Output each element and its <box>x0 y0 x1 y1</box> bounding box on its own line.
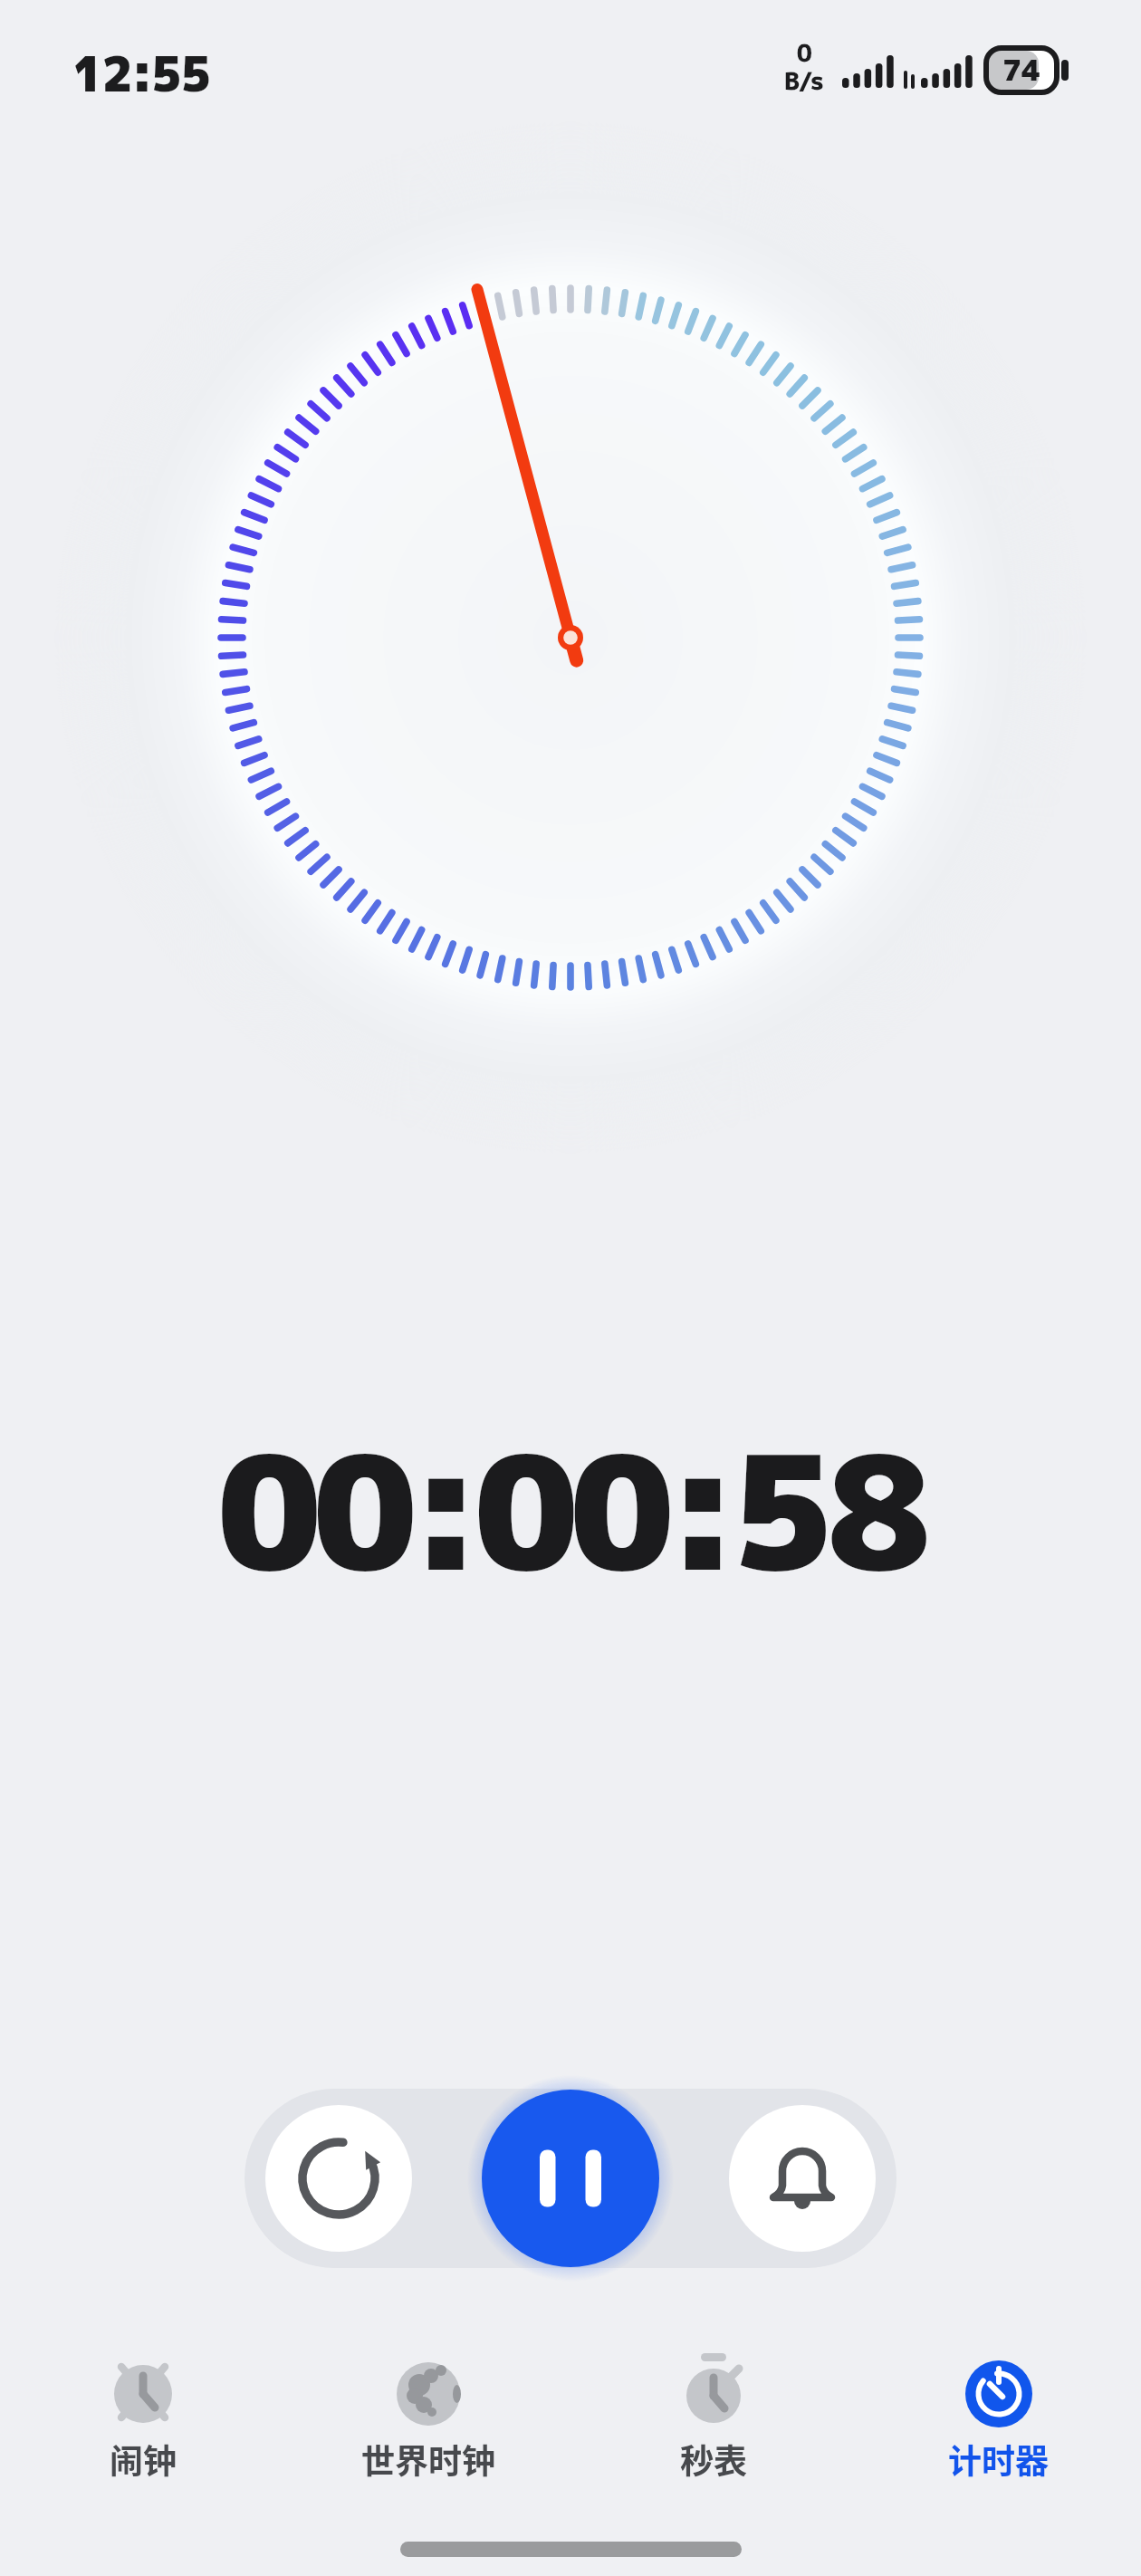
button[interactable]: 闹钟 <box>0 2351 285 2484</box>
button[interactable]: 计时器 <box>856 2351 1141 2484</box>
staticText: 12:55 <box>72 41 210 95</box>
button[interactable] <box>265 2105 412 2252</box>
staticText: 秒表 <box>680 2435 747 2484</box>
staticText: 世界时钟 <box>361 2435 495 2484</box>
button[interactable] <box>729 2105 876 2252</box>
staticText: 00:00:58 <box>217 1400 924 1620</box>
staticText: B/s <box>784 63 824 96</box>
staticText: 闹钟 <box>110 2435 177 2484</box>
button[interactable]: 秒表 <box>570 2351 856 2484</box>
staticText: 74 <box>1002 50 1041 91</box>
button[interactable] <box>482 2090 659 2267</box>
button[interactable]: 世界时钟 <box>285 2351 570 2484</box>
staticText: 计时器 <box>948 2435 1049 2484</box>
staticText: 0 <box>797 36 812 67</box>
